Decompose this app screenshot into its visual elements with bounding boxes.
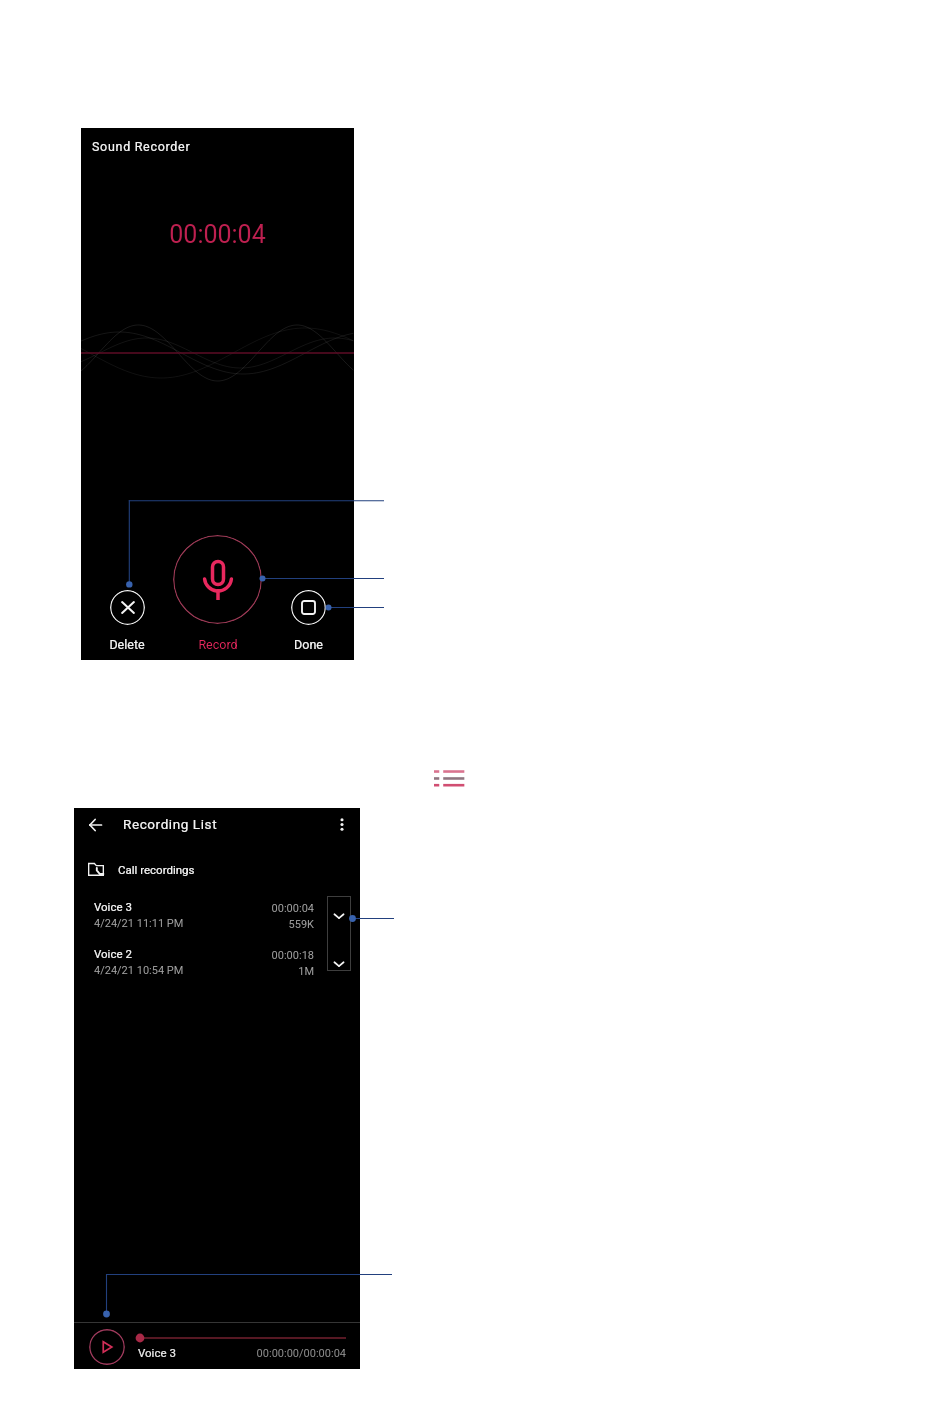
button[interactable]: Expand	[327, 954, 351, 974]
staticText: 4/24/21 10:54 PM	[94, 964, 184, 977]
button[interactable]: Done	[291, 590, 326, 625]
staticText: Voice 3	[94, 900, 132, 913]
staticText: 4/24/21 11:11 PM	[94, 917, 184, 930]
button[interactable]: Delete	[110, 590, 145, 625]
staticText: 00:00:00/00:00:04	[229, 1347, 346, 1360]
button[interactable]: Expand	[327, 906, 351, 926]
staticText: 00:00:04	[169, 220, 266, 249]
staticText: 00:00:18	[209, 949, 314, 962]
staticText: Done	[294, 637, 323, 652]
staticText: 00:00:04	[209, 902, 314, 915]
button[interactable]: Voice 3	[74, 898, 360, 934]
button[interactable]: Voice 2	[74, 945, 360, 981]
button[interactable]: Record	[173, 535, 262, 624]
staticText: Call recordings	[118, 863, 195, 876]
staticText: 1M	[209, 965, 314, 978]
button[interactable]: Call recordings	[88, 854, 360, 884]
button[interactable]: List	[432, 766, 465, 790]
staticText: Voice 3	[138, 1346, 176, 1359]
staticText: Recording List	[123, 816, 218, 832]
staticText: Voice 2	[94, 947, 132, 960]
staticText: Sound Recorder	[92, 139, 191, 154]
staticText: 559K	[209, 918, 314, 931]
button[interactable]: Play	[89, 1329, 125, 1365]
button[interactable]: More options	[327, 810, 356, 839]
staticText: Record	[198, 637, 238, 652]
button[interactable]: Back	[79, 809, 111, 841]
staticText: Delete	[109, 637, 145, 652]
